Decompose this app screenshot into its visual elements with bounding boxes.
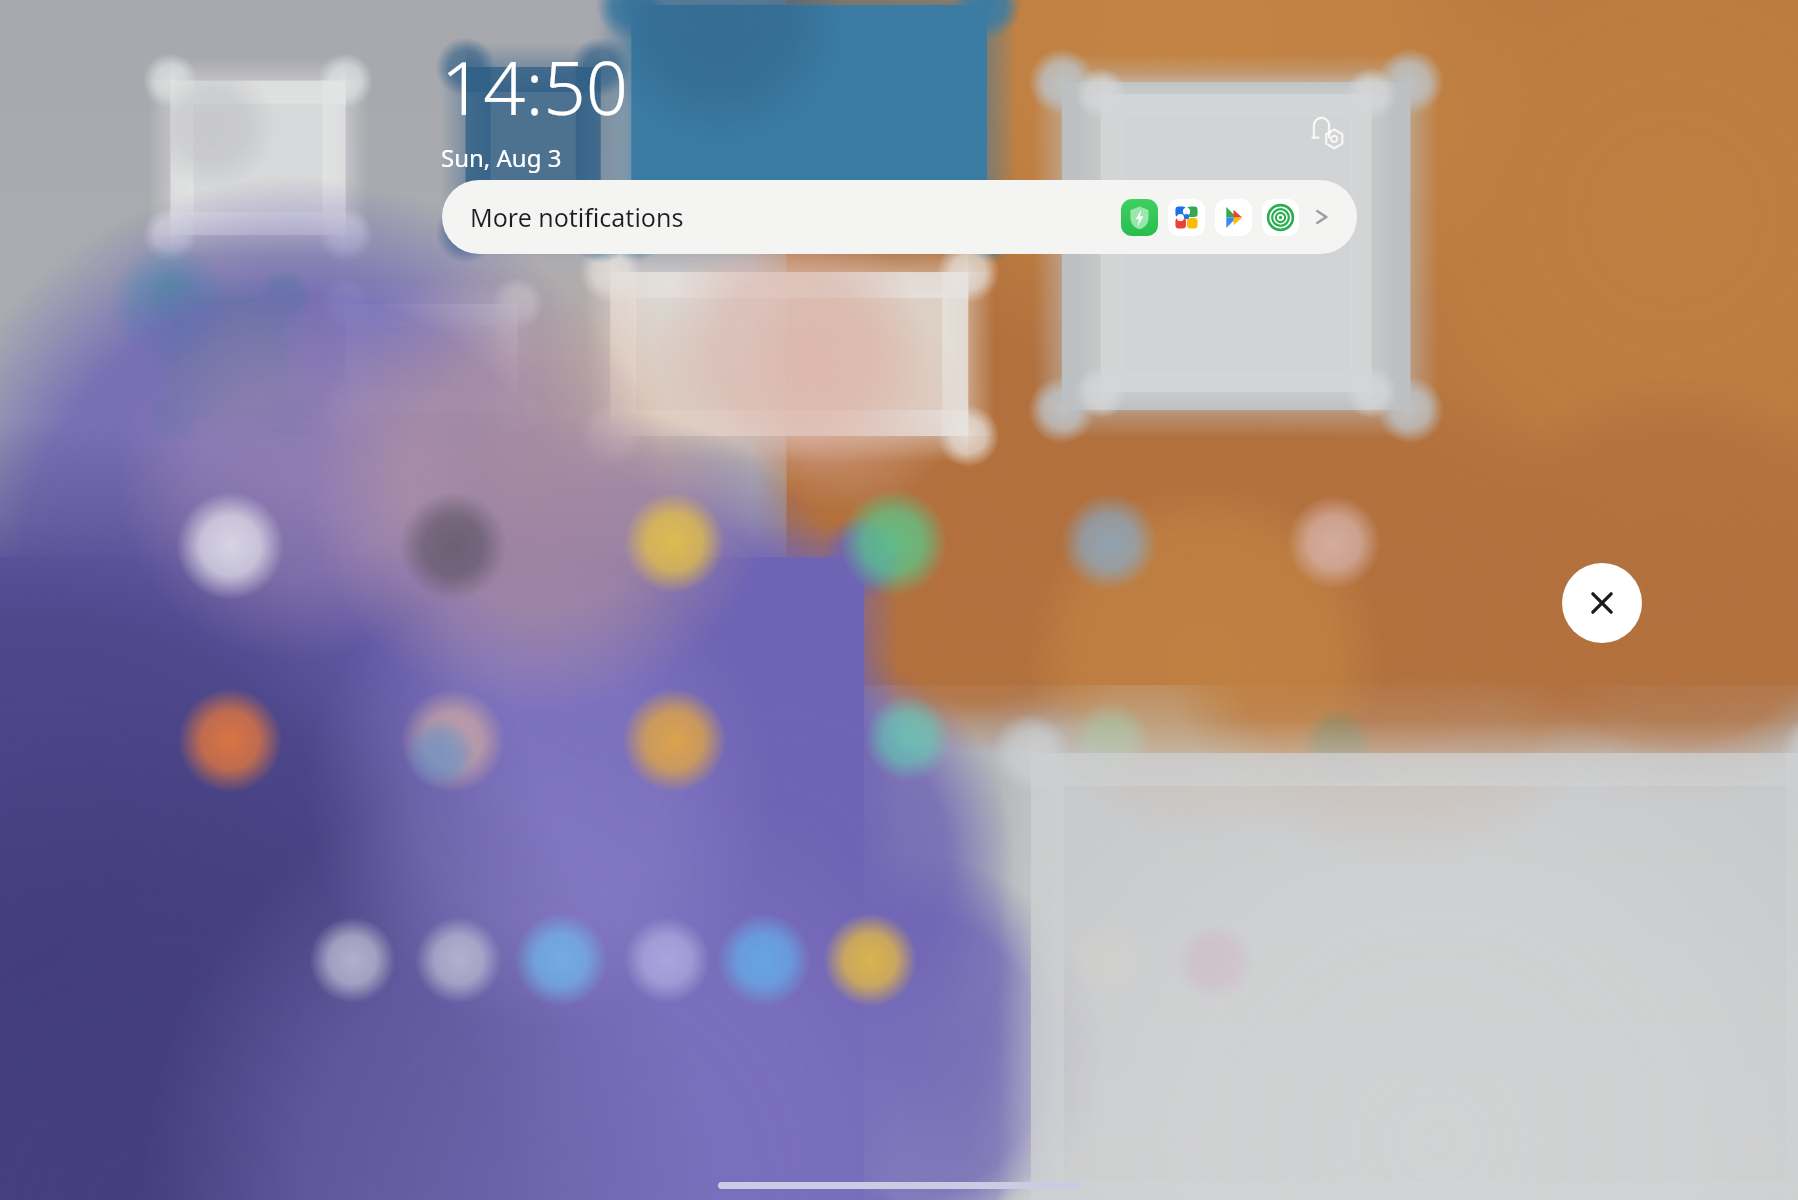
- staticText: More notifications: [470, 200, 684, 234]
- staticText: 14:50: [441, 36, 629, 137]
- button[interactable]: More notifications: [442, 180, 1357, 254]
- button[interactable]: Close: [1562, 563, 1642, 643]
- button[interactable]: Notification settings: [1303, 108, 1353, 158]
- staticText: Sun, Aug 3: [441, 141, 562, 174]
